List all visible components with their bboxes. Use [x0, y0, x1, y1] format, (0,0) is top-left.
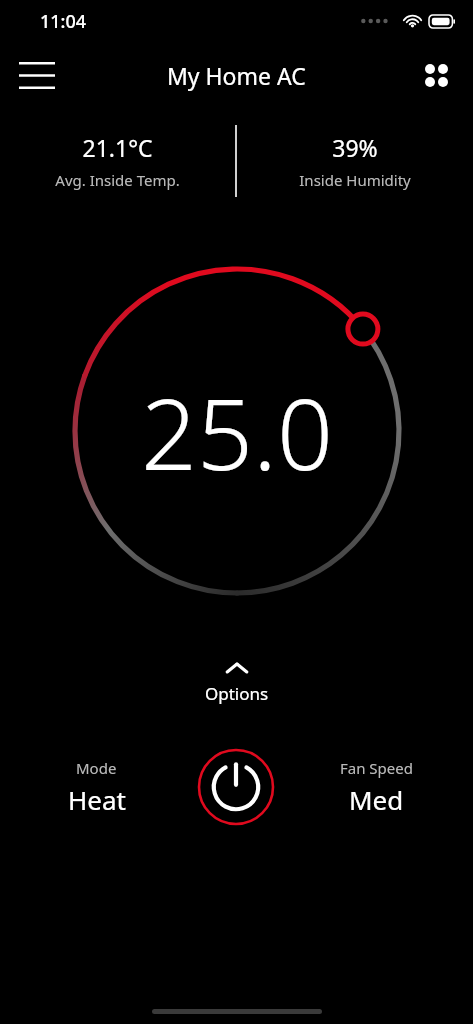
staticText: Mode: [76, 758, 117, 778]
staticText: My Home AC: [167, 60, 306, 91]
button[interactable]: 39%: [237, 132, 473, 190]
staticText: Med: [349, 782, 404, 817]
staticText: Heat: [68, 782, 126, 817]
button[interactable]: Power: [193, 744, 279, 830]
staticText: Options: [205, 682, 269, 705]
staticText: Fan Speed: [340, 758, 413, 778]
button[interactable]: Options: [0, 661, 473, 705]
button[interactable]: Temperature dial: [61, 255, 413, 607]
staticText: 25.0: [141, 365, 333, 498]
button[interactable]: Menu: [8, 46, 66, 104]
staticText: Inside Humidity: [299, 170, 411, 190]
staticText: 21.1°C: [82, 132, 153, 163]
button[interactable]: Mode: [0, 758, 193, 817]
staticText: Avg. Inside Temp.: [55, 170, 180, 190]
staticText: 11:04: [40, 9, 87, 34]
button[interactable]: Fan Speed: [279, 758, 473, 817]
button[interactable]: 21.1°C: [0, 132, 235, 190]
button[interactable]: Devices grid: [407, 46, 465, 104]
staticText: 39%: [332, 132, 378, 163]
